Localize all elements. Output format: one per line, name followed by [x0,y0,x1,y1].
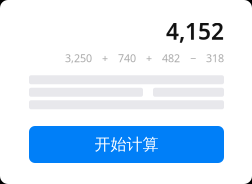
staticText: 开始计算 [94,135,158,154]
staticText: 482 [162,51,180,65]
staticText: + [146,51,152,65]
staticText: 3,250 [65,51,92,65]
staticText: + [102,51,108,65]
button[interactable]: 开始计算 [29,126,224,163]
staticText: 4,152 [166,16,224,46]
staticText: 740 [118,51,136,65]
staticText: − [190,51,196,65]
staticText: 318 [206,51,224,65]
